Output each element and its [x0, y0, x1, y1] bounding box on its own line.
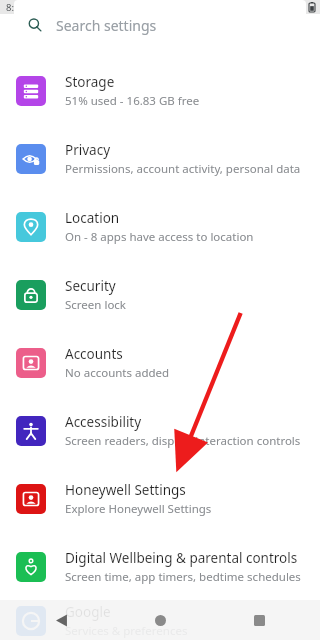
button[interactable]: Search settings	[14, 0, 306, 43]
button[interactable]: Google	[0, 601, 320, 640]
button[interactable]: Accounts	[0, 329, 320, 397]
staticText: On - 8 apps have access to location	[65, 229, 254, 245]
staticText: Permissions, account activity, personal …	[65, 161, 301, 177]
staticText: 8:51 AM	[6, 1, 43, 14]
staticText: Location	[65, 209, 120, 227]
button[interactable]: Digital Wellbeing & parental controls	[0, 533, 320, 601]
staticText: 51% used - 16.83 GB free	[65, 93, 200, 109]
staticText: Accounts	[65, 345, 123, 363]
staticText: Screen time, app timers, bedtime schedul…	[65, 569, 301, 585]
button[interactable]: Recent apps	[244, 605, 274, 635]
staticText: Screen lock	[65, 297, 127, 313]
staticText: Honeywell Settings	[65, 481, 186, 499]
staticText: Google	[65, 603, 111, 621]
staticText: Explore Honeywell Settings	[65, 501, 212, 517]
button[interactable]: Home	[145, 605, 175, 635]
button[interactable]: Honeywell Settings	[0, 465, 320, 533]
staticText: Digital Wellbeing & parental controls	[65, 549, 298, 567]
staticText: Services & preferences	[65, 623, 188, 639]
staticText: Search settings	[56, 16, 157, 35]
staticText: Security	[65, 277, 116, 295]
staticText: Screen readers, display, interaction con…	[65, 433, 301, 449]
staticText: Storage	[65, 73, 115, 91]
button[interactable]: Accessibility	[0, 397, 320, 465]
staticText: Privacy	[65, 141, 111, 159]
button[interactable]: Back	[46, 605, 76, 635]
button[interactable]: Security	[0, 261, 320, 329]
button[interactable]: Storage	[0, 57, 320, 125]
button[interactable]: Privacy	[0, 125, 320, 193]
button[interactable]: Location	[0, 193, 320, 261]
staticText: No accounts added	[65, 365, 170, 381]
staticText: Accessibility	[65, 413, 142, 431]
